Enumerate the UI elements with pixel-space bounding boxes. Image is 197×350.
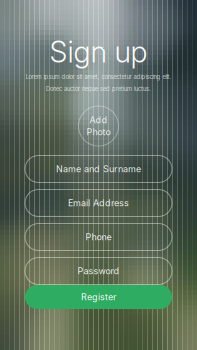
button[interactable]: Register	[25, 285, 172, 309]
staticText: Donec auctor neque sed pretium luctus.	[46, 85, 151, 92]
staticText: Lorem ipsum dolor sit amet, consectetur …	[25, 73, 171, 80]
button[interactable]: Email Address	[25, 189, 172, 216]
staticText: Add	[89, 115, 107, 125]
staticText: Photo	[86, 126, 110, 137]
button[interactable]: Add	[78, 106, 118, 146]
staticText: Name and Surname	[56, 164, 141, 174]
button[interactable]: Name and Surname	[25, 155, 172, 182]
staticText: Phone	[85, 232, 111, 242]
staticText: Password	[77, 266, 119, 276]
staticText: Register	[81, 292, 116, 302]
staticText: Email Address	[68, 198, 129, 208]
button[interactable]: Password	[25, 257, 172, 284]
staticText: Sign up	[49, 34, 147, 70]
button[interactable]: Phone	[25, 223, 172, 250]
